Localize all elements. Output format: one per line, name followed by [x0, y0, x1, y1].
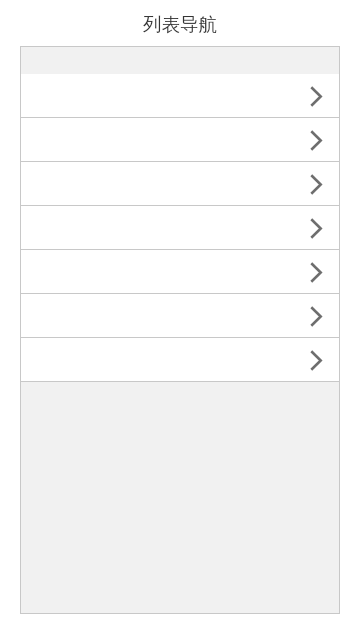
- button[interactable]: List item, open: [20, 74, 340, 118]
- button[interactable]: List item, open: [20, 250, 340, 294]
- button[interactable]: List item, open: [20, 118, 340, 162]
- button[interactable]: List item, open: [20, 162, 340, 206]
- button[interactable]: List item, open: [20, 338, 340, 382]
- staticText: 列表导航: [143, 13, 217, 36]
- button[interactable]: List item, open: [20, 294, 340, 338]
- button[interactable]: List item, open: [20, 206, 340, 250]
